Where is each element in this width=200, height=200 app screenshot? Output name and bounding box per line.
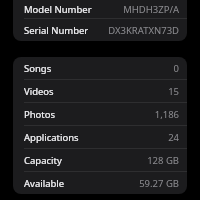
staticText: DX3KRATXN73D [108,24,179,37]
staticText: 128 GB [147,154,179,167]
button[interactable]: Videos [13,80,187,102]
staticText: Model Number [24,3,92,16]
staticText: 0 [173,62,179,75]
button[interactable]: Serial Number [13,19,187,41]
button[interactable]: Applications [13,126,187,148]
button[interactable]: Photos [13,103,187,125]
staticText: Capacity [24,154,62,167]
staticText: MHDH3ZP/A [123,3,179,16]
staticText: 15 [168,85,179,98]
button[interactable]: Model Number [13,0,187,18]
button[interactable]: Capacity [13,149,187,171]
button[interactable]: Available [13,172,187,194]
staticText: Applications [24,131,79,144]
button[interactable]: Songs [13,57,187,79]
staticText: Songs [24,62,52,75]
staticText: Videos [24,85,54,98]
staticText: 59.27 GB [139,177,179,190]
staticText: 24 [168,131,179,144]
staticText: 1,186 [154,108,179,121]
staticText: Available [24,177,65,190]
staticText: Photos [24,108,56,121]
staticText: Serial Number [24,24,89,37]
